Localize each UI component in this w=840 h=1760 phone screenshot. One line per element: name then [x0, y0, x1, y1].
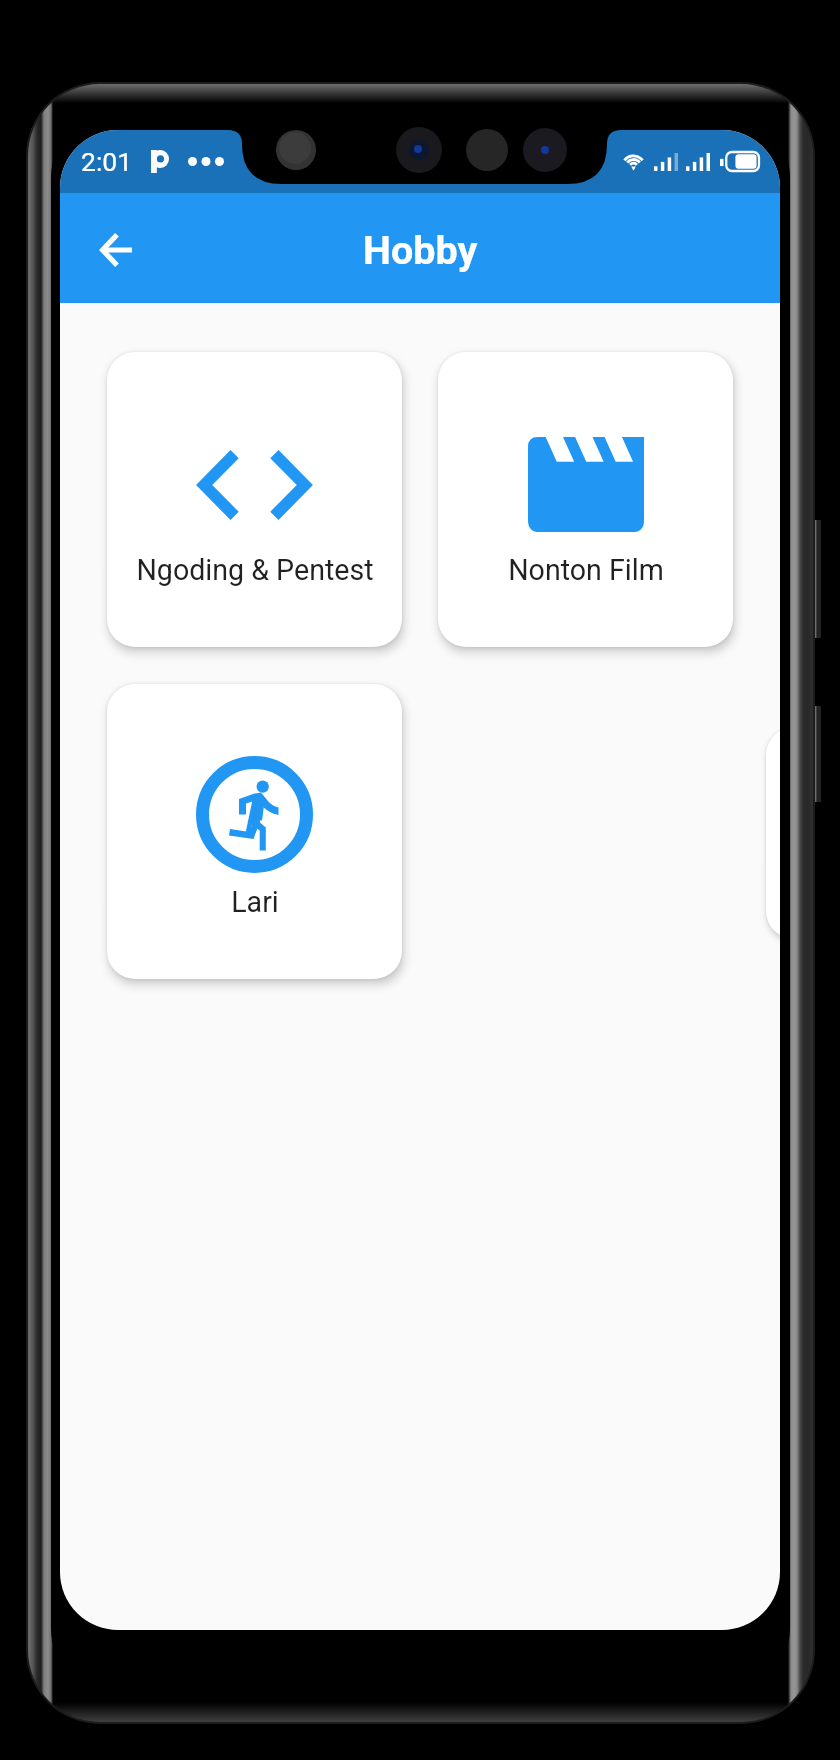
button[interactable]: More hobbies	[766, 727, 780, 939]
button[interactable]: Ngoding & Pentest	[107, 352, 402, 647]
button[interactable]: Back	[88, 220, 144, 276]
staticText: Hobby	[363, 227, 478, 273]
button[interactable]: Lari	[107, 684, 402, 979]
staticText: Nonton Film	[508, 553, 664, 587]
staticText: 2:01	[81, 146, 133, 177]
staticText: Lari	[231, 885, 279, 919]
staticText: Ngoding & Pentest	[136, 553, 374, 587]
button[interactable]: Nonton Film	[438, 352, 733, 647]
